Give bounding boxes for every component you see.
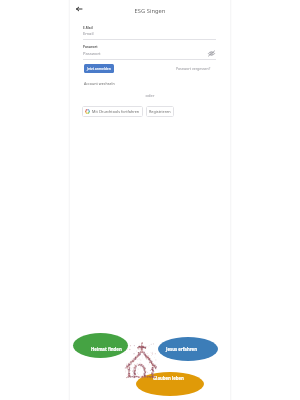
staticText: oder bbox=[70, 93, 230, 98]
button[interactable]: Account wechseln bbox=[84, 81, 115, 86]
button[interactable]: Jetzt anmelden bbox=[84, 64, 114, 73]
staticText: Heimat finden bbox=[91, 346, 122, 352]
staticText: Jesus erfahren bbox=[166, 346, 197, 352]
staticText: Passwort bbox=[83, 45, 98, 49]
staticText: Passwort bbox=[83, 51, 101, 57]
staticText: Email bbox=[83, 31, 94, 37]
button[interactable]: Show password bbox=[207, 49, 215, 57]
staticText: ESG Singen bbox=[70, 7, 230, 15]
staticText: Registrieren bbox=[149, 109, 171, 114]
staticText: Jetzt anmelden bbox=[87, 66, 111, 71]
button[interactable]: Mit Churchtools fortfahren bbox=[82, 106, 143, 117]
button[interactable]: Passwort vergessen? bbox=[176, 66, 211, 71]
staticText: Mit Churchtools fortfahren bbox=[92, 109, 140, 114]
button[interactable]: Registrieren bbox=[146, 106, 174, 117]
button[interactable]: Back bbox=[71, 1, 86, 16]
staticText: E-Mail bbox=[83, 26, 93, 30]
staticText: Passwort vergessen? bbox=[176, 66, 211, 71]
staticText: Account wechseln bbox=[84, 81, 115, 86]
staticText: Glauben leben bbox=[153, 375, 184, 381]
